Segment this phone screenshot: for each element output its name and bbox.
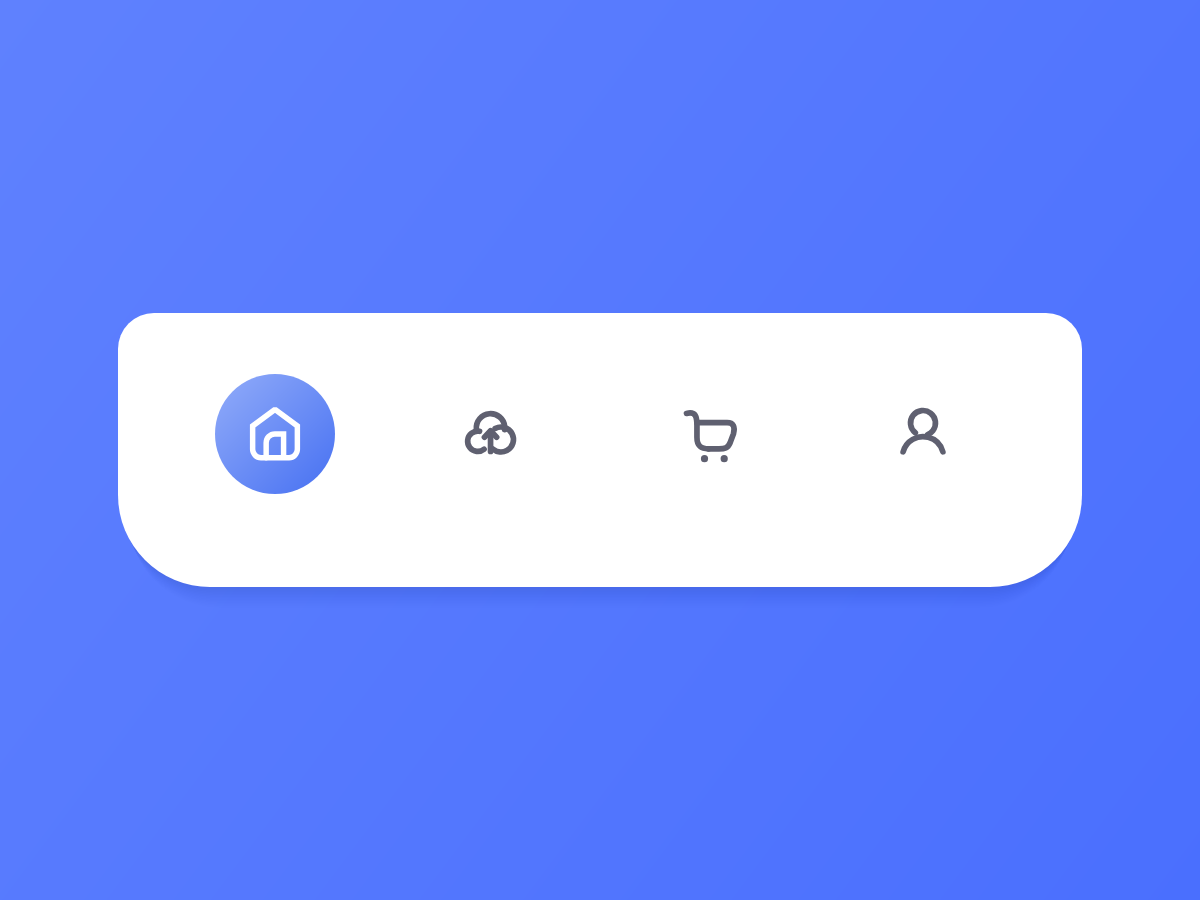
button[interactable]: Profile xyxy=(868,379,978,489)
button[interactable]: Cart xyxy=(655,379,765,489)
button[interactable]: Upload to cloud xyxy=(437,379,547,489)
button[interactable]: Home xyxy=(215,374,335,494)
